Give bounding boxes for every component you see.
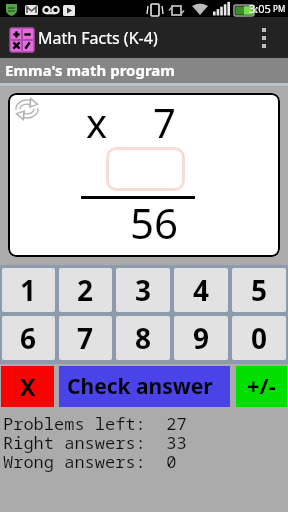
staticText: 0: [251, 319, 268, 357]
button[interactable]: X: [1, 366, 54, 407]
staticText: 56: [130, 194, 179, 251]
button[interactable]: Check answer: [59, 366, 230, 407]
staticText: x: [86, 95, 108, 149]
button[interactable]: 9: [174, 316, 228, 360]
staticText: 8: [135, 319, 152, 357]
staticText: 7: [77, 319, 94, 357]
staticText: X: [20, 371, 36, 402]
staticText: 9: [193, 319, 210, 357]
button[interactable]: 5: [232, 268, 286, 312]
staticText: Wrong answers: 0: [3, 450, 177, 473]
staticText: +/-: [247, 370, 276, 400]
button[interactable]: [262, 28, 266, 48]
button[interactable]: 1: [2, 268, 55, 312]
button[interactable]: 7: [59, 316, 112, 360]
staticText: PM: [271, 3, 286, 14]
staticText: 4: [193, 271, 210, 309]
staticText: 1: [20, 271, 37, 309]
staticText: 5: [251, 271, 268, 309]
button[interactable]: 8: [116, 316, 170, 360]
staticText: 7: [153, 95, 176, 149]
staticText: 6: [20, 319, 37, 357]
staticText: 2: [77, 271, 94, 309]
button[interactable]: 4: [174, 268, 228, 312]
staticText: Check answer: [67, 372, 213, 401]
button[interactable]: 2: [59, 268, 112, 312]
staticText: Problems left: 27: [3, 412, 187, 435]
staticText: Math Facts (K-4): [38, 27, 158, 49]
button[interactable]: +/-: [236, 366, 287, 407]
staticText: Emma's math program: [5, 60, 175, 80]
button[interactable]: 3: [116, 268, 170, 312]
button[interactable]: 6: [2, 316, 55, 360]
button[interactable]: [14, 96, 40, 122]
button[interactable]: 0: [232, 316, 286, 360]
staticText: 3:05: [249, 1, 271, 16]
staticText: 3: [135, 271, 152, 309]
staticText: Right answers: 33: [3, 431, 187, 454]
